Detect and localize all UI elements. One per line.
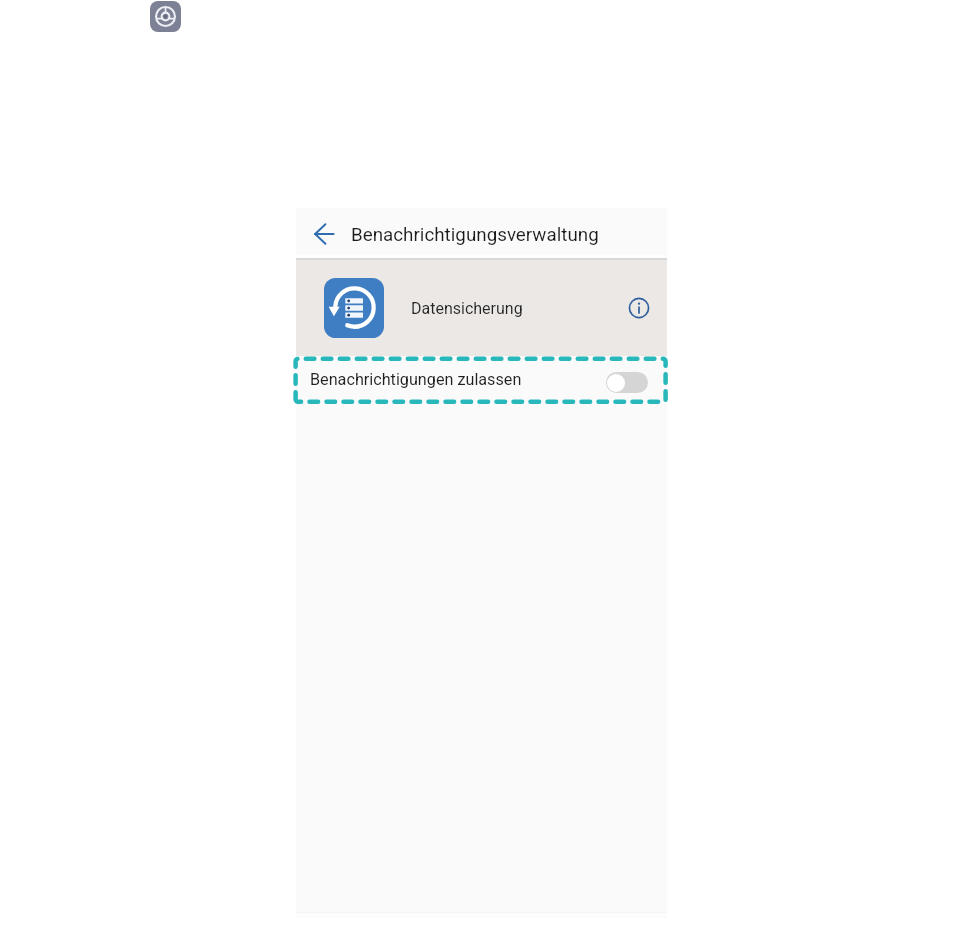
button[interactable]: App shortcut <box>150 1 181 32</box>
button[interactable]: Back <box>312 221 338 247</box>
button[interactable]: Benachrichtigungen zulassen <box>606 372 648 393</box>
staticText: Datensicherung <box>411 299 523 318</box>
staticText: Benachrichtigungen zulassen <box>310 370 522 389</box>
staticText: Benachrichtigungsverwaltung <box>351 224 599 246</box>
button[interactable]: Datensicherung <box>324 278 384 338</box>
button[interactable]: Benachrichtigungen zulassen <box>296 356 667 403</box>
button[interactable]: Info <box>622 291 655 324</box>
